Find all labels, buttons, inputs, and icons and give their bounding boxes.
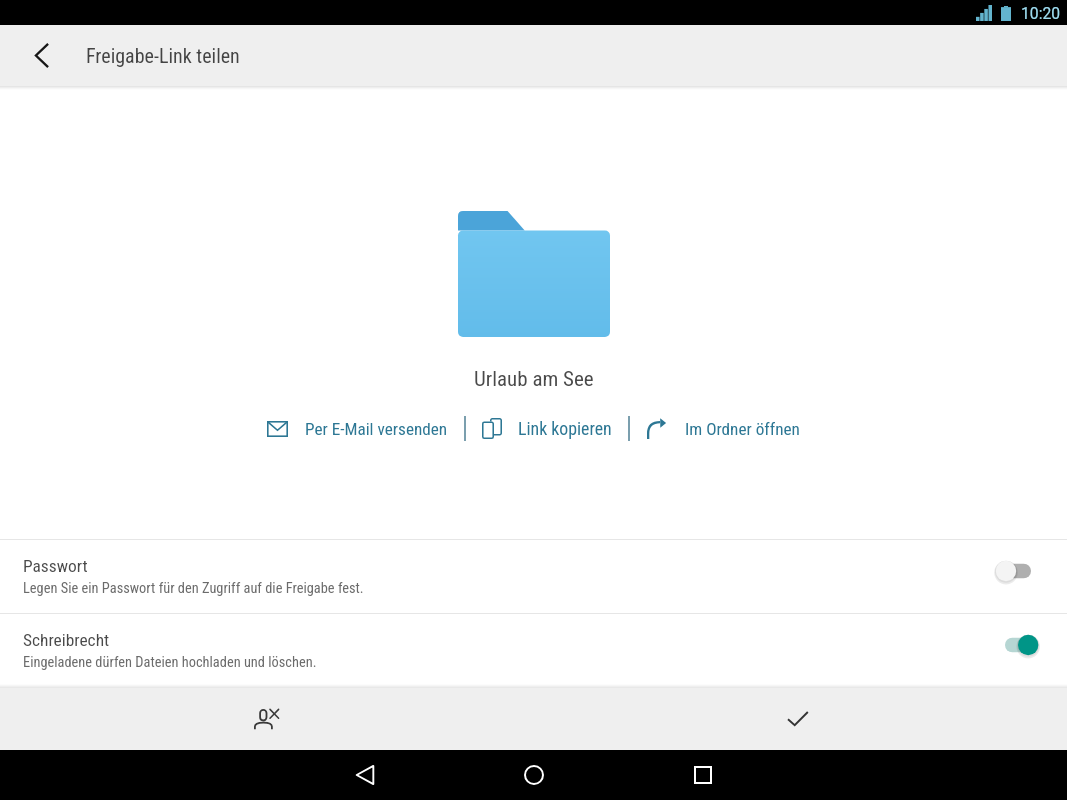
staticText: Im Ordner öffnen [685,419,800,439]
button[interactable]: Im Ordner öffnen [630,410,817,447]
staticText: Legen Sie ein Passwort für den Zugriff a… [23,580,364,597]
staticText: Link kopieren [518,418,612,439]
button[interactable]: Person entfernen [0,688,533,750]
button[interactable]: Link kopieren [466,410,628,447]
staticText: Passwort [23,556,88,576]
button[interactable]: Zurück [281,750,449,800]
button[interactable]: Per E-Mail versenden [251,411,464,447]
button[interactable]: Passwort [0,540,1067,613]
staticText: Eingeladene dürfen Dateien hochladen und… [23,654,317,671]
button[interactable]: Bestätigen [533,688,1067,750]
staticText: Urlaub am See [474,367,594,392]
staticText: Schreibrecht [23,630,110,650]
button[interactable]: Zurück [11,25,73,86]
button[interactable]: Aus [990,554,1038,588]
button[interactable]: Zuletzt verwendet [618,750,787,800]
staticText: Freigabe-Link teilen [86,44,240,67]
button[interactable]: An [990,628,1038,662]
button[interactable]: Schreibrecht [0,614,1067,688]
staticText: Per E-Mail versenden [305,419,448,439]
button[interactable]: Startbildschirm [449,750,618,800]
staticText: 10:20 [1021,4,1061,22]
